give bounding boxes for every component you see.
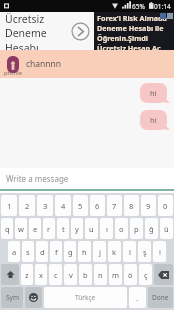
staticText: g — [68, 247, 73, 257]
staticText: e — [33, 224, 38, 234]
button[interactable]: 8 — [124, 195, 139, 216]
button[interactable]: a — [8, 241, 20, 262]
staticText: z — [25, 270, 29, 280]
button[interactable]: k — [108, 241, 121, 262]
button[interactable]: b — [79, 264, 92, 285]
staticText: Forex'i Risk Almada — [97, 13, 167, 23]
button[interactable]: 4 — [55, 195, 71, 216]
button[interactable]: w — [15, 218, 27, 239]
button[interactable]: m — [109, 264, 122, 285]
button[interactable]: g — [64, 241, 76, 262]
button[interactable]: t — [57, 218, 69, 239]
button[interactable]: Key — [148, 287, 173, 308]
staticText: Hesabı — [5, 41, 39, 50]
button[interactable]: d — [36, 241, 48, 262]
staticText: 8 — [129, 201, 134, 211]
button[interactable]: Key — [1, 287, 23, 308]
button[interactable]: ü — [160, 218, 173, 239]
staticText: s — [26, 247, 30, 257]
button[interactable]: 1 — [1, 195, 17, 216]
staticText: y — [75, 224, 79, 234]
button[interactable]: ş — [138, 241, 151, 262]
button[interactable]: z — [21, 264, 33, 285]
staticText: ö — [128, 270, 133, 280]
staticText: j — [99, 247, 101, 257]
staticText: ğ — [149, 224, 154, 234]
staticText: Write a message — [6, 173, 69, 184]
staticText: 01:14 — [154, 2, 171, 11]
staticText: ı — [106, 224, 108, 234]
staticText: b — [83, 270, 88, 280]
button[interactable]: 5 — [73, 195, 88, 216]
staticText: 9 — [146, 201, 151, 211]
staticText: p — [134, 224, 139, 234]
button[interactable]: ı — [100, 218, 113, 239]
staticText: l — [129, 247, 131, 257]
staticText: Done — [152, 293, 169, 302]
button[interactable]: u — [85, 218, 98, 239]
button[interactable]: v — [64, 264, 77, 285]
button[interactable]: hi — [140, 83, 170, 103]
button[interactable]: c — [49, 264, 62, 285]
staticText: r — [47, 224, 51, 234]
staticText: 7 — [112, 201, 117, 211]
staticText: profile — [4, 69, 23, 77]
button[interactable]: ğ — [145, 218, 158, 239]
staticText: f — [55, 247, 58, 257]
staticText: 2 — [25, 201, 30, 211]
button[interactable]: Key — [1, 264, 19, 285]
button[interactable]: p — [130, 218, 143, 239]
staticText: ü — [164, 224, 169, 234]
button[interactable]: n — [94, 264, 107, 285]
staticText: m — [112, 270, 120, 280]
button[interactable]: o — [115, 218, 128, 239]
button[interactable]: j — [93, 241, 106, 262]
button[interactable]: l — [123, 241, 136, 262]
staticText: 0 — [163, 201, 168, 211]
staticText: u — [89, 224, 94, 234]
button[interactable]: Write a message — [0, 168, 174, 193]
staticText: Ücretsiz Deneme — [5, 12, 72, 40]
staticText: q — [5, 224, 10, 234]
button[interactable]: Advertisement — [0, 12, 174, 50]
button[interactable]: Key — [25, 287, 42, 308]
staticText: o — [119, 224, 124, 234]
button[interactable]: Key — [129, 287, 146, 308]
staticText: 65% — [132, 2, 145, 11]
staticText: . — [136, 293, 139, 303]
staticText: hi — [150, 88, 157, 98]
button[interactable]: e — [29, 218, 41, 239]
button[interactable]: r — [43, 218, 55, 239]
button[interactable]: h — [78, 241, 91, 262]
button[interactable]: ö — [124, 264, 137, 285]
staticText: 1 — [7, 201, 12, 211]
button[interactable]: i — [153, 241, 166, 262]
button[interactable]: 0 — [158, 195, 173, 216]
staticText: channnn — [26, 58, 62, 70]
button[interactable]: 9 — [141, 195, 156, 216]
staticText: x — [39, 270, 43, 280]
staticText: Öğrenin.Şimdi — [97, 33, 148, 43]
staticText: 3 — [43, 201, 48, 211]
button[interactable]: hi — [140, 110, 170, 130]
staticText: Sym — [6, 293, 19, 302]
button[interactable]: 7 — [107, 195, 122, 216]
staticText: a — [12, 247, 17, 257]
button[interactable]: 6 — [90, 195, 105, 216]
button[interactable]: 2 — [19, 195, 35, 216]
staticText: c — [54, 270, 58, 280]
staticText: t — [62, 224, 65, 234]
staticText: 4 — [61, 201, 66, 211]
button[interactable]: s — [22, 241, 34, 262]
staticText: w — [18, 224, 24, 234]
staticText: n — [98, 270, 103, 280]
button[interactable]: channnn — [0, 50, 174, 78]
button[interactable]: 3 — [37, 195, 53, 216]
button[interactable]: ç — [139, 264, 152, 285]
button[interactable]: Key — [154, 264, 173, 285]
button[interactable]: x — [35, 264, 47, 285]
button[interactable]: f — [50, 241, 62, 262]
button[interactable]: Key — [44, 287, 127, 308]
button[interactable]: y — [71, 218, 83, 239]
button[interactable]: q — [1, 218, 13, 239]
